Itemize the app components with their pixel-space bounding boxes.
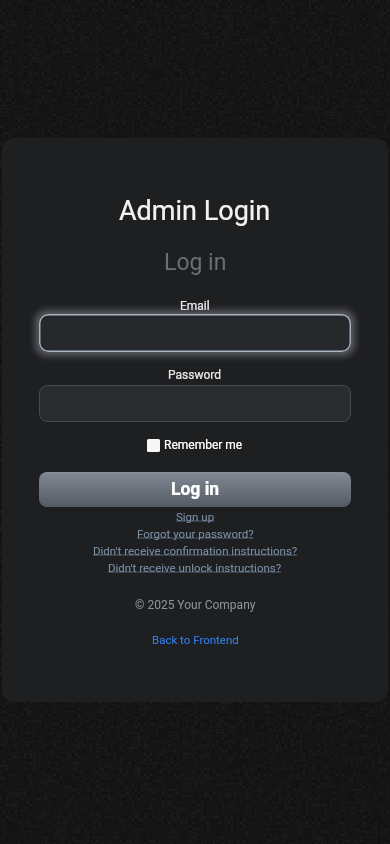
staticText: Password	[168, 368, 222, 382]
staticText: Admin Login	[119, 195, 271, 227]
button[interactable]: Didn't receive unlock instructions?	[108, 561, 282, 574]
button[interactable]: Back to Frontend	[152, 633, 239, 646]
button[interactable]: Log in	[39, 472, 351, 507]
button[interactable]: Forgot your password?	[137, 527, 254, 540]
staticText: Log in	[164, 249, 227, 276]
button[interactable]: Didn't receive confirmation instructions…	[93, 544, 298, 557]
staticText: © 2025 Your Company	[135, 598, 256, 612]
button[interactable]	[39, 385, 351, 422]
button[interactable]: Sign up	[176, 510, 215, 523]
staticText: Log in	[171, 479, 220, 500]
staticText: Email	[180, 299, 210, 313]
staticText: Remember me	[164, 438, 243, 452]
button[interactable]: Remember me	[147, 438, 243, 452]
button[interactable]	[39, 314, 351, 352]
